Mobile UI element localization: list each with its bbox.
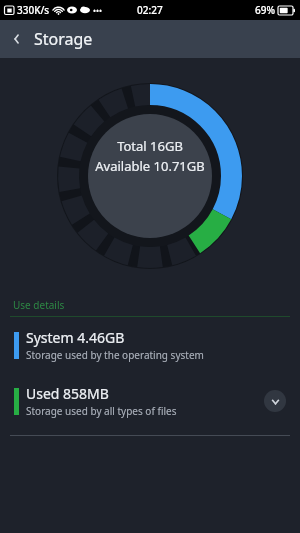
staticText: 69%	[255, 3, 275, 17]
staticText: •••	[93, 5, 103, 16]
staticText: System 4.46GB	[26, 328, 125, 347]
button[interactable]: Expand	[264, 390, 286, 412]
staticText: Used 858MB	[26, 384, 109, 403]
staticText: Available 10.71GB	[95, 157, 205, 175]
staticText: Total 16GB	[117, 137, 183, 155]
staticText: 330K/s	[17, 3, 50, 17]
button[interactable]: Used 858MB	[0, 373, 300, 429]
staticText: Storage	[34, 28, 93, 50]
staticText: 02:27	[137, 3, 163, 17]
staticText: Use details	[13, 298, 65, 312]
button[interactable]: Back	[0, 22, 34, 56]
staticText: Storage used by the operating system	[26, 348, 204, 362]
staticText: Storage used by all types of files	[26, 404, 177, 418]
button[interactable]: System 4.46GB	[0, 317, 300, 373]
